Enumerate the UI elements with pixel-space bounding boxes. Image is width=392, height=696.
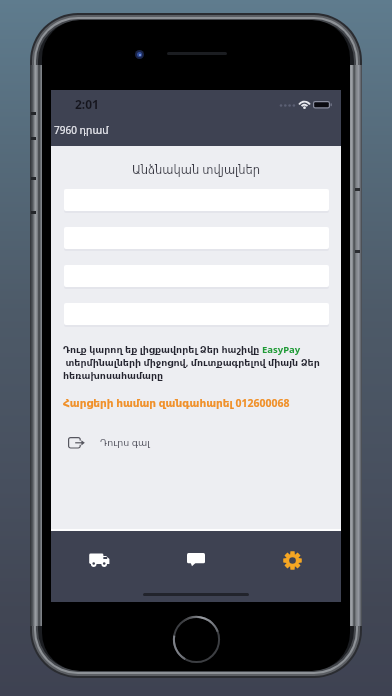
staticText: Դուք կարող եք լիցքավորել Ձեր հաշիվը (63, 343, 262, 356)
staticText: Դուրս գալ (100, 436, 150, 449)
staticText: 2:01 (75, 96, 99, 112)
staticText: 7960 դրամ (54, 123, 109, 137)
button[interactable]: Դուրս գալ (63, 436, 150, 449)
staticText: տերմինալների միջոցով, մուտքագրելով միայն… (63, 356, 320, 381)
button[interactable]: Deliveries (51, 534, 147, 586)
staticText: Հարցերի համար զանգահարել 012600068 (63, 396, 290, 410)
button[interactable]: Messages (147, 534, 244, 586)
staticText: EasyPay (262, 343, 301, 356)
button[interactable]: Settings (244, 534, 341, 586)
staticText: Անձնական տվյալներ (51, 162, 341, 178)
